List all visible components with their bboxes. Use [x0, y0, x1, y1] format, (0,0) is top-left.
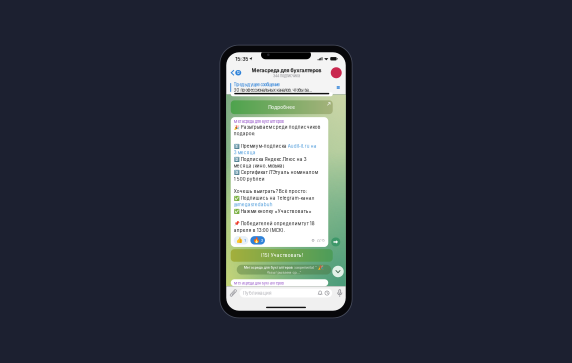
staticText: 👍 — [236, 237, 243, 244]
staticText: Мегасреда для бухгалтеров — [251, 67, 321, 73]
button[interactable]: Back — [229, 68, 243, 78]
staticText: апреля в 13:00 (МСК). — [234, 227, 285, 233]
staticText: 1️⃣ Премиум-подписка — [234, 143, 288, 149]
staticText: Хочешь выиграть? Всё просто: — [234, 189, 307, 194]
button[interactable]: Channel avatar — [330, 67, 343, 78]
staticText: Мегасреда для бухгалтеров — [244, 265, 293, 270]
staticText: 🔥 — [252, 237, 259, 244]
button[interactable]: Предыдущее сообщение — [226, 80, 346, 95]
staticText: 344 подписчика — [273, 74, 300, 78]
staticText: Мегасреда для бухгалтеров — [234, 281, 284, 286]
staticText: 3 месяца — [234, 150, 256, 155]
staticText: 2️⃣ Подписка Яндекс.Плюс на 3 — [234, 156, 307, 162]
staticText: 🎉 Разыгрываем среди подписчиков — [234, 124, 321, 130]
button[interactable]: 🔥 — [250, 236, 265, 244]
staticText: (15) Участвовать! — [261, 253, 303, 258]
staticText: Подробнее — [268, 104, 295, 110]
staticText: Мегасреда для бухгалтеров — [234, 119, 284, 124]
staticText: Публикация — [243, 290, 272, 296]
staticText: @megasredabuh — [234, 202, 273, 207]
button[interactable]: (15) Участвовать! — [231, 249, 333, 262]
button[interactable]: Schedule message — [325, 290, 330, 295]
button[interactable]: Мегасреда для бухгалтеров — [237, 265, 331, 275]
staticText: 🎉 — [318, 265, 324, 270]
button[interactable]: Scroll to latest message — [332, 266, 344, 277]
staticText: 1 — [244, 238, 246, 243]
staticText: 1 500 рублей — [234, 176, 265, 182]
button[interactable]: Record voice message — [337, 289, 343, 297]
staticText: подарок: — [234, 131, 255, 136]
staticText: 3️⃣ Сертификат Л'Этуаль номиналом — [234, 170, 318, 175]
staticText: Audit-it. ru на — [288, 143, 317, 149]
staticText: 30 профессиональных каналов, чтобы ва… — [234, 88, 313, 93]
staticText: 📌 Победителей определим тут 18 — [234, 221, 315, 226]
staticText: 15:35 — [235, 56, 248, 62]
staticText: ✅ Нажми кнопку «Участвовать» — [234, 208, 312, 214]
staticText: ✅ Подпишись на Telegram-канал — [234, 195, 315, 201]
staticText: 22:15 — [317, 238, 325, 242]
staticText: месяца (кино, музыка) — [234, 163, 285, 169]
staticText: 3 — [261, 238, 263, 243]
staticText: Разыгрываем ср…" — [266, 270, 301, 275]
button[interactable]: Attach — [230, 289, 237, 297]
staticText: 12 — [237, 71, 240, 75]
button[interactable]: Подробнее — [231, 100, 333, 114]
button[interactable]: 👍 — [234, 236, 248, 244]
button[interactable]: Forward message — [328, 237, 340, 247]
button[interactable]: Mute notifications — [318, 290, 322, 295]
staticText: закрепил(а) " — [294, 265, 317, 270]
staticText: Предыдущее сообщение — [234, 82, 280, 87]
